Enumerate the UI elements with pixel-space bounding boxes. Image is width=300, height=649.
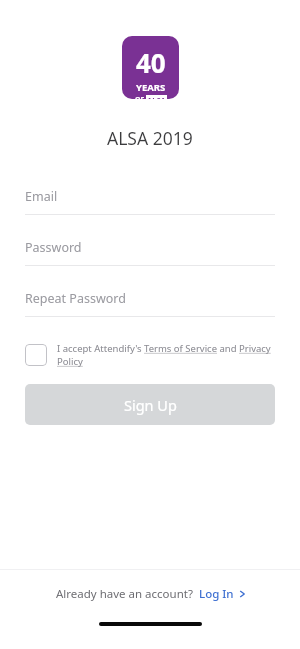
staticText: OF <box>135 95 145 99</box>
staticText: 40 <box>136 45 166 80</box>
staticText: Email <box>25 188 58 205</box>
button[interactable]: Sign Up <box>25 384 275 425</box>
button[interactable]: Accept Terms of Service checkbox <box>25 342 275 368</box>
staticText: ALSA <box>147 95 166 99</box>
staticText: Already have an account? <box>56 586 193 602</box>
staticText: ALSA 2019 <box>107 126 193 150</box>
button[interactable]: Email <box>0 178 300 229</box>
staticText: YEARS <box>136 81 166 94</box>
other: Accept Terms of Service checkbox <box>25 344 47 366</box>
staticText: Log In <box>199 586 234 602</box>
staticText: Repeat Password <box>25 290 126 307</box>
button[interactable]: Password <box>0 229 300 280</box>
button[interactable]: Repeat Password <box>0 280 300 331</box>
staticText: Sign Up <box>124 395 177 415</box>
staticText: I accept Attendify's Terms of Service an… <box>57 342 275 368</box>
button[interactable]: Already have an account? <box>48 578 253 610</box>
staticText: Password <box>25 239 82 256</box>
